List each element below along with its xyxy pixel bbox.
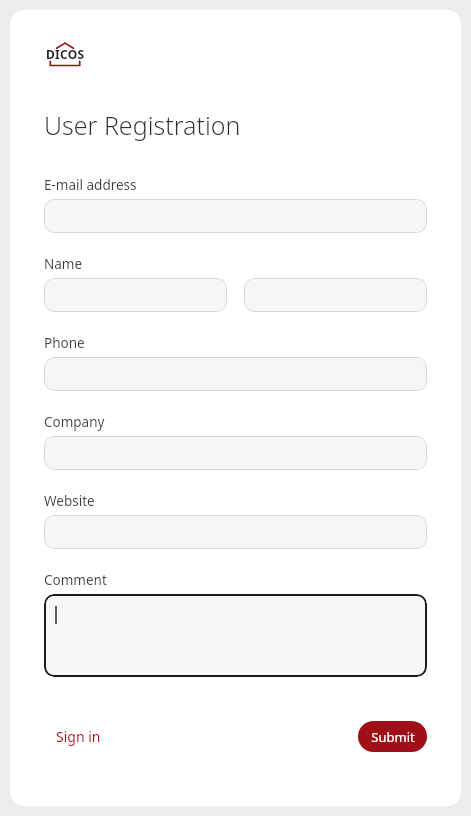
- staticText: Company: [44, 413, 105, 431]
- staticText: Website: [44, 492, 95, 510]
- button[interactable]: [44, 357, 427, 391]
- button[interactable]: [44, 594, 427, 677]
- staticText: Comment: [44, 571, 107, 589]
- button[interactable]: [44, 436, 427, 470]
- button[interactable]: Sign in: [44, 721, 113, 752]
- button[interactable]: [44, 515, 427, 549]
- button[interactable]: [44, 199, 427, 233]
- staticText: Phone: [44, 334, 85, 352]
- button[interactable]: [44, 278, 227, 312]
- staticText: E-mail address: [44, 176, 137, 194]
- button[interactable]: [244, 278, 427, 312]
- staticText: Name: [44, 255, 83, 273]
- button[interactable]: Submit: [358, 721, 427, 752]
- staticText: Sign in: [56, 727, 101, 746]
- staticText: User Registration: [44, 108, 241, 142]
- staticText: DICOS: [46, 46, 85, 62]
- staticText: Submit: [371, 728, 415, 746]
